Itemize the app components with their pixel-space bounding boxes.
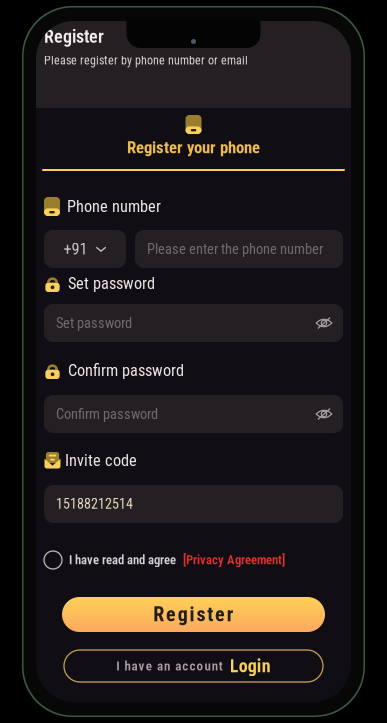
button[interactable]: Show Confirm password	[310, 396, 338, 432]
staticText: Register your phone	[127, 138, 260, 157]
staticText: I have read and agree	[69, 553, 176, 567]
staticText: Phone number	[67, 197, 161, 216]
staticText: Confirm password	[68, 361, 184, 380]
staticText: Please register by phone number or email	[44, 53, 248, 68]
staticText: +91	[63, 239, 87, 259]
staticText: Please enter the phone number	[147, 241, 323, 257]
staticText: I have an account	[116, 658, 223, 674]
staticText: Confirm password	[56, 406, 158, 422]
staticText: Set password	[56, 315, 132, 331]
staticText: 15188212514	[56, 496, 133, 512]
button[interactable]: I have read and agree	[44, 551, 343, 569]
staticText: Register	[44, 26, 104, 47]
button[interactable]: Register your phone	[36, 108, 351, 171]
staticText: Invite code	[65, 451, 137, 470]
staticText: Set password	[68, 274, 155, 293]
button[interactable]: I have an account	[64, 650, 323, 682]
button[interactable]: +91	[44, 230, 126, 268]
button[interactable]: Show Set password	[310, 305, 338, 341]
staticText: Register	[153, 603, 234, 626]
staticText: [Privacy Agreement]	[183, 553, 285, 567]
staticText: Login	[230, 655, 271, 677]
button[interactable]: Register	[62, 597, 325, 632]
